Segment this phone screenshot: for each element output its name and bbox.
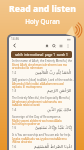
button[interactable]: Bookmark (44, 43, 50, 49)
staticText: Iyyaka naAAbudu wa-iyyaka nastaAAeenu (12, 137, 67, 141)
button[interactable]: In the name of Allah, the Entirely Merci… (9, 51, 74, 69)
button[interactable]: sahih international page 1 surah 1 (11, 51, 72, 58)
button[interactable]: 1:3 (9, 88, 74, 106)
staticText: aqibatu lil muttaqeena (12, 85, 42, 89)
button[interactable]: 1:4 (9, 107, 74, 125)
staticText: 1:4 (12, 108, 17, 112)
staticText: Read and listen (9, 3, 76, 15)
staticText: Bismi Allahi alrrahmani alrraheemi wa ma (12, 63, 67, 67)
staticText: 1:3 (12, 89, 17, 93)
staticText: arsalnaka illa rahmatan (12, 66, 43, 70)
button[interactable]: Font size (58, 43, 64, 49)
staticText: Holy Quran (25, 17, 60, 26)
button[interactable]: 1:5 (9, 125, 74, 143)
button[interactable]: 1:2 (9, 70, 74, 88)
staticText: taAAala rabbi al izzati (12, 103, 40, 107)
staticText: ihdina alssirata (12, 140, 32, 144)
button[interactable]: Search (51, 43, 57, 49)
staticText: Alhamdu lillahi rabbi alAAalameena wal (12, 82, 64, 86)
staticText: 1:6 (12, 145, 17, 149)
staticText: [All] praise is [due] to Allah, Lord of … (12, 78, 74, 82)
staticText: اهْدِنَا الصِّرَاطَ الْمُسْتَقِيمَ (34, 144, 72, 149)
button[interactable]: More options (65, 43, 71, 49)
staticText: kulli shayin qadeerun (12, 122, 41, 126)
staticText: إِيَّاكَ نَعْبُدُ وَإِيَّاكَ نَسْتَعِينُ (35, 125, 72, 130)
staticText: sahih international page 1 surah 1 (15, 53, 68, 57)
staticText: Maliki yawmi alddeeni wa huwa AAala (12, 119, 62, 123)
staticText: It is You we worship and You we ask for … (12, 133, 71, 137)
staticText: The Entirely Merciful, the Especially Me… (12, 96, 71, 100)
other: Listen (65, 21, 83, 39)
staticText: الْحَمْدُ لِلَّهِ رَبِّ الْعَالَمِينَ (35, 70, 72, 75)
staticText: Alrrahmani alrraheemi subhanahu wa (12, 100, 62, 104)
staticText: مَالِكِ يَوْمِ الدِّينِ (47, 107, 72, 112)
staticText: 14:36 (11, 37, 20, 41)
staticText: Sovereign of the Day of Recompense. (12, 115, 61, 119)
staticText: 1:2 (12, 71, 17, 75)
button[interactable]: 1:6 (9, 144, 74, 150)
button[interactable]: Back (11, 42, 18, 49)
staticText: In the name of Allah, the Entirely Merci… (12, 59, 73, 63)
staticText: 1:5 (12, 126, 17, 130)
staticText: الرَّحْمَٰنِ الرَّحِيمِ (47, 88, 72, 93)
